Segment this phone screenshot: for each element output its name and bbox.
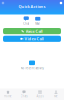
button[interactable]: Settings [58,0,64,6]
button[interactable]: Chat [21,17,31,25]
button[interactable]: Video Call [3,36,61,42]
button[interactable]: Voice Call [3,28,61,34]
staticText: Chats [20,94,27,98]
staticText: Mail [35,22,40,25]
staticText: Voice Call [26,28,43,34]
button[interactable]: Me [48,88,64,100]
button[interactable]: Back [0,0,6,6]
button[interactable]: Home [0,88,16,100]
staticText: Home [4,94,12,98]
button[interactable]: Apps [32,88,48,100]
staticText: No recent activity [20,66,43,70]
button[interactable]: Mail [33,17,42,25]
staticText: Chat [23,22,29,25]
staticText: Quick Actions [18,4,45,9]
staticText: Apps [36,94,43,98]
staticText: Me [54,94,58,98]
button[interactable]: Chats [16,88,32,100]
staticText: Video Call [25,36,44,41]
